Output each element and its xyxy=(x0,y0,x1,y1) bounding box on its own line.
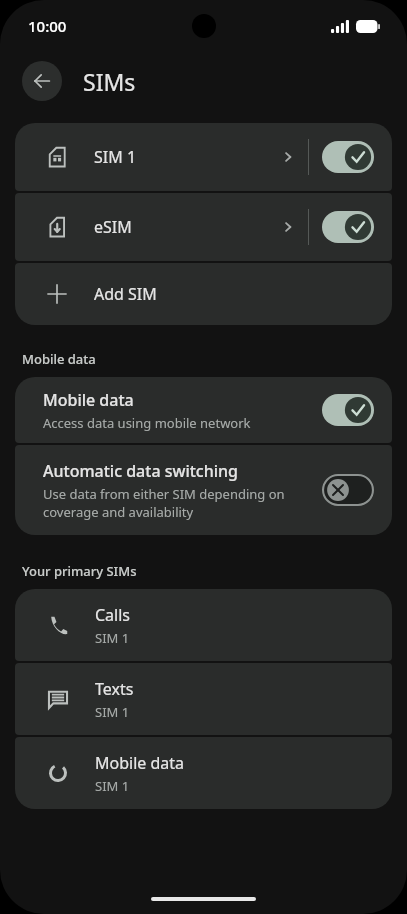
staticText: Your primary SIMs xyxy=(22,562,137,580)
button[interactable]: SIM 1 xyxy=(15,123,308,191)
button[interactable]: Add SIM xyxy=(15,263,392,325)
staticText: 10:00 xyxy=(28,16,67,36)
staticText: SIM 1 xyxy=(94,146,137,168)
button[interactable]: Texts xyxy=(15,663,392,735)
button[interactable]: eSIM xyxy=(15,193,308,261)
staticText: SIM 1 xyxy=(95,703,130,721)
button[interactable]: Mobile data xyxy=(15,377,392,443)
staticText: eSIM xyxy=(94,216,132,238)
button[interactable]: Mobile data xyxy=(15,737,392,809)
button[interactable]: Toggle eSIM xyxy=(309,193,392,261)
staticText: Texts xyxy=(95,678,134,700)
staticText: SIM 1 xyxy=(95,629,130,647)
staticText: SIM 1 xyxy=(95,777,130,795)
staticText: Automatic data switching xyxy=(43,460,238,482)
staticText: Add SIM xyxy=(94,283,157,305)
staticText: SIMs xyxy=(83,66,136,97)
staticText: Mobile data xyxy=(22,350,96,368)
button[interactable]: Back xyxy=(22,61,62,101)
button[interactable]: Calls xyxy=(15,589,392,661)
button[interactable]: Toggle SIM 1 xyxy=(309,123,392,191)
staticText: Mobile data xyxy=(95,752,185,774)
button[interactable]: Automatic data switching xyxy=(15,445,392,535)
staticText: Mobile data xyxy=(43,389,134,411)
staticText: Use data from either SIM depending on co… xyxy=(43,485,310,521)
staticText: Calls xyxy=(95,604,131,626)
staticText: Access data using mobile network xyxy=(43,414,251,432)
